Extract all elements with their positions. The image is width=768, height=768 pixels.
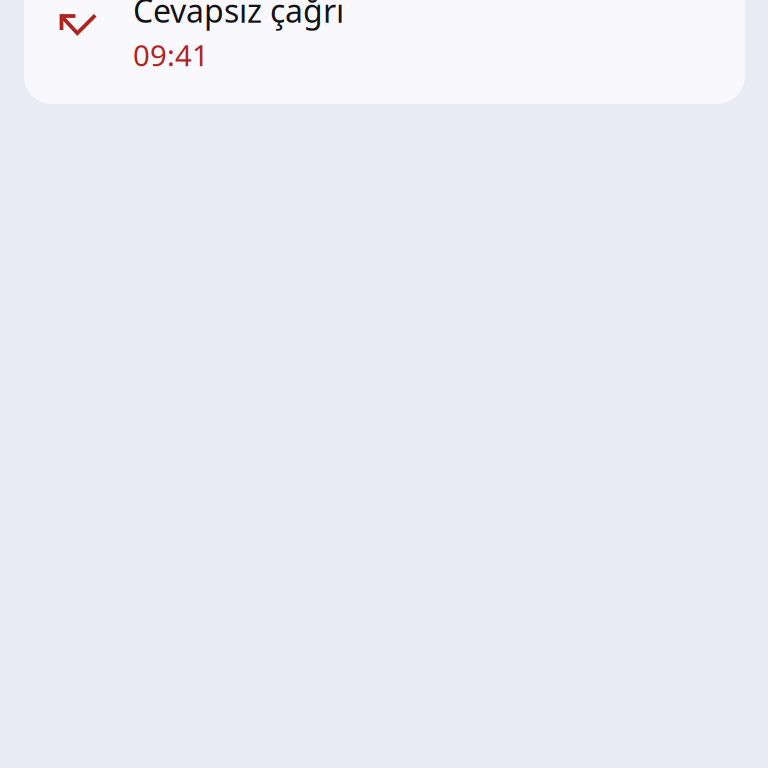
staticText: 09:41 bbox=[133, 35, 209, 74]
button[interactable]: Cevapsız çağrı bbox=[24, 0, 745, 104]
staticText: Cevapsız çağrı bbox=[133, 0, 344, 31]
